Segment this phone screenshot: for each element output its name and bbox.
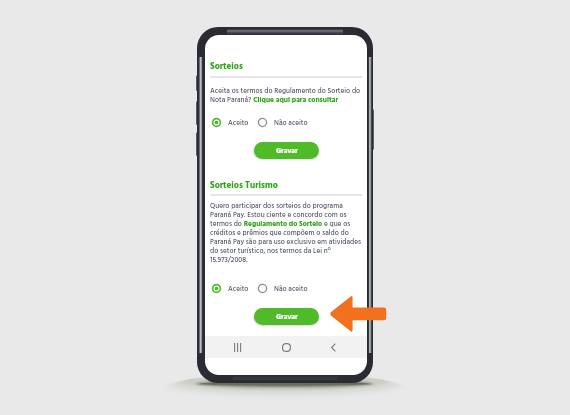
button[interactable]: Home [272,336,300,358]
staticText: Sorteios Turismo [210,179,278,193]
button[interactable]: Back [319,336,347,358]
staticText: Aceito [228,283,249,295]
button[interactable]: Gravar [254,308,319,325]
button[interactable]: Aceito [210,116,249,129]
staticText: Aceito [228,117,249,129]
staticText: Sorteios [210,60,243,74]
button[interactable]: Recent apps [224,336,252,358]
button[interactable]: Não aceito [256,282,308,295]
button[interactable]: Não aceito [256,116,308,129]
staticText: Gravar [276,311,298,323]
button[interactable]: Aceito [210,282,249,295]
staticText: Aceita os termos do Regulamento do Sorte… [210,85,362,106]
staticText: Não aceito [274,283,308,295]
other: Pointer arrow [329,294,387,333]
staticText: Não aceito [274,117,308,129]
staticText: Quero participar dos sorteios do program… [210,200,362,266]
button[interactable]: Gravar [254,142,319,159]
staticText: Gravar [276,145,298,157]
